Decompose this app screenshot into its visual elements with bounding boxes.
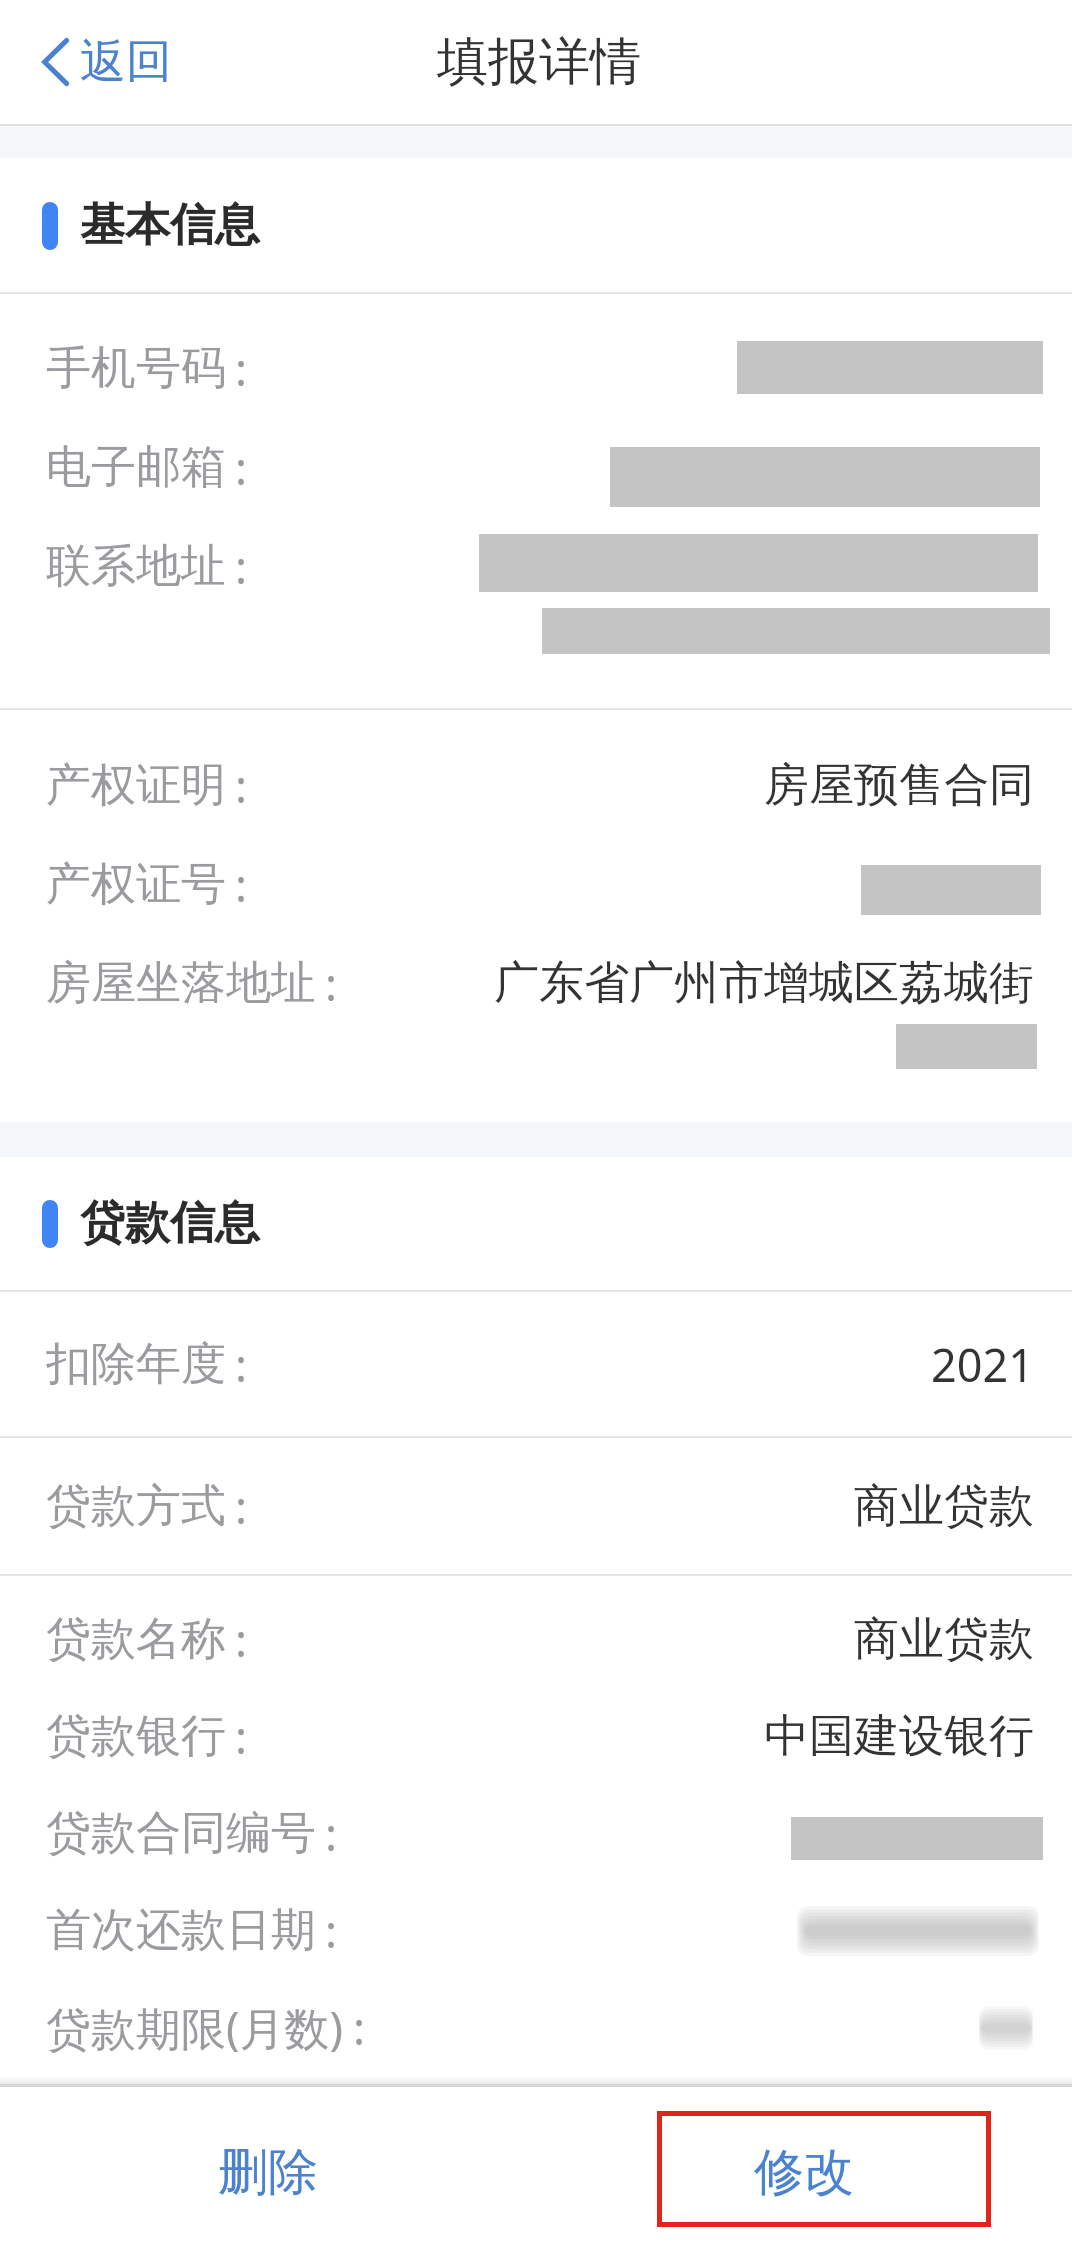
- staticText: 填报详情: [437, 30, 641, 94]
- button[interactable]: 删除: [0, 2087, 536, 2258]
- button[interactable]: 产权证号: [0, 835, 1072, 934]
- staticText: 贷款合同编号: [46, 1805, 316, 1862]
- staticText: 手机号码: [46, 340, 226, 397]
- staticText: 贷款名称: [46, 1611, 226, 1668]
- staticText: 产权证明: [46, 757, 226, 814]
- staticText: 贷款期限(月数): [46, 1997, 344, 2058]
- staticText: :: [325, 1803, 338, 1864]
- button[interactable]: 贷款合同编号: [0, 1785, 1072, 1882]
- button[interactable]: 贷款名称: [0, 1591, 1072, 1688]
- staticText: 扣除年度: [46, 1336, 226, 1393]
- staticText: 商业贷款: [854, 1478, 1034, 1535]
- button[interactable]: 首次还款日期: [0, 1882, 1072, 1979]
- staticText: 首次还款日期: [46, 1902, 316, 1959]
- staticText: 返回: [80, 33, 172, 91]
- staticText: 贷款银行: [46, 1708, 226, 1765]
- staticText: 电子邮箱: [46, 439, 226, 496]
- staticText: 商业贷款: [854, 1611, 1034, 1668]
- staticText: :: [325, 953, 338, 1014]
- staticText: :: [235, 755, 248, 816]
- staticText: :: [235, 536, 248, 597]
- button[interactable]: 扣除年度: [0, 1292, 1072, 1436]
- staticText: :: [235, 1706, 248, 1767]
- staticText: 删除: [218, 2141, 318, 2204]
- staticText: 贷款信息: [80, 1195, 260, 1252]
- staticText: :: [325, 1900, 338, 1961]
- staticText: :: [235, 854, 248, 915]
- button[interactable]: 贷款方式: [0, 1438, 1072, 1574]
- staticText: :: [235, 338, 248, 399]
- staticText: 广东省广州市增城区荔城街: [494, 955, 1034, 1012]
- button[interactable]: 修改: [536, 2087, 1072, 2258]
- staticText: :: [235, 437, 248, 498]
- button[interactable]: 产权证明: [0, 736, 1072, 835]
- button[interactable]: 联系地址: [0, 517, 1072, 616]
- staticText: 产权证号: [46, 856, 226, 913]
- button[interactable]: 电子邮箱: [0, 418, 1072, 517]
- button[interactable]: 手机号码: [0, 319, 1072, 418]
- staticText: 房屋坐落地址: [46, 955, 316, 1012]
- staticText: 中国建设银行: [764, 1708, 1034, 1765]
- staticText: 联系地址: [46, 538, 226, 595]
- staticText: 房屋预售合同: [764, 757, 1034, 814]
- button[interactable]: 房屋坐落地址: [0, 934, 1072, 1033]
- staticText: :: [235, 1334, 248, 1395]
- button[interactable]: 贷款期限(月数): [0, 1979, 1072, 2076]
- staticText: 贷款方式: [46, 1478, 226, 1535]
- button[interactable]: 贷款银行: [0, 1688, 1072, 1785]
- staticText: :: [353, 1997, 366, 2058]
- staticText: 修改: [754, 2141, 854, 2204]
- staticText: :: [235, 1609, 248, 1670]
- staticText: 基本信息: [80, 197, 260, 254]
- staticText: :: [235, 1476, 248, 1537]
- button[interactable]: 返回: [30, 19, 182, 105]
- staticText: 2021: [931, 1334, 1034, 1395]
